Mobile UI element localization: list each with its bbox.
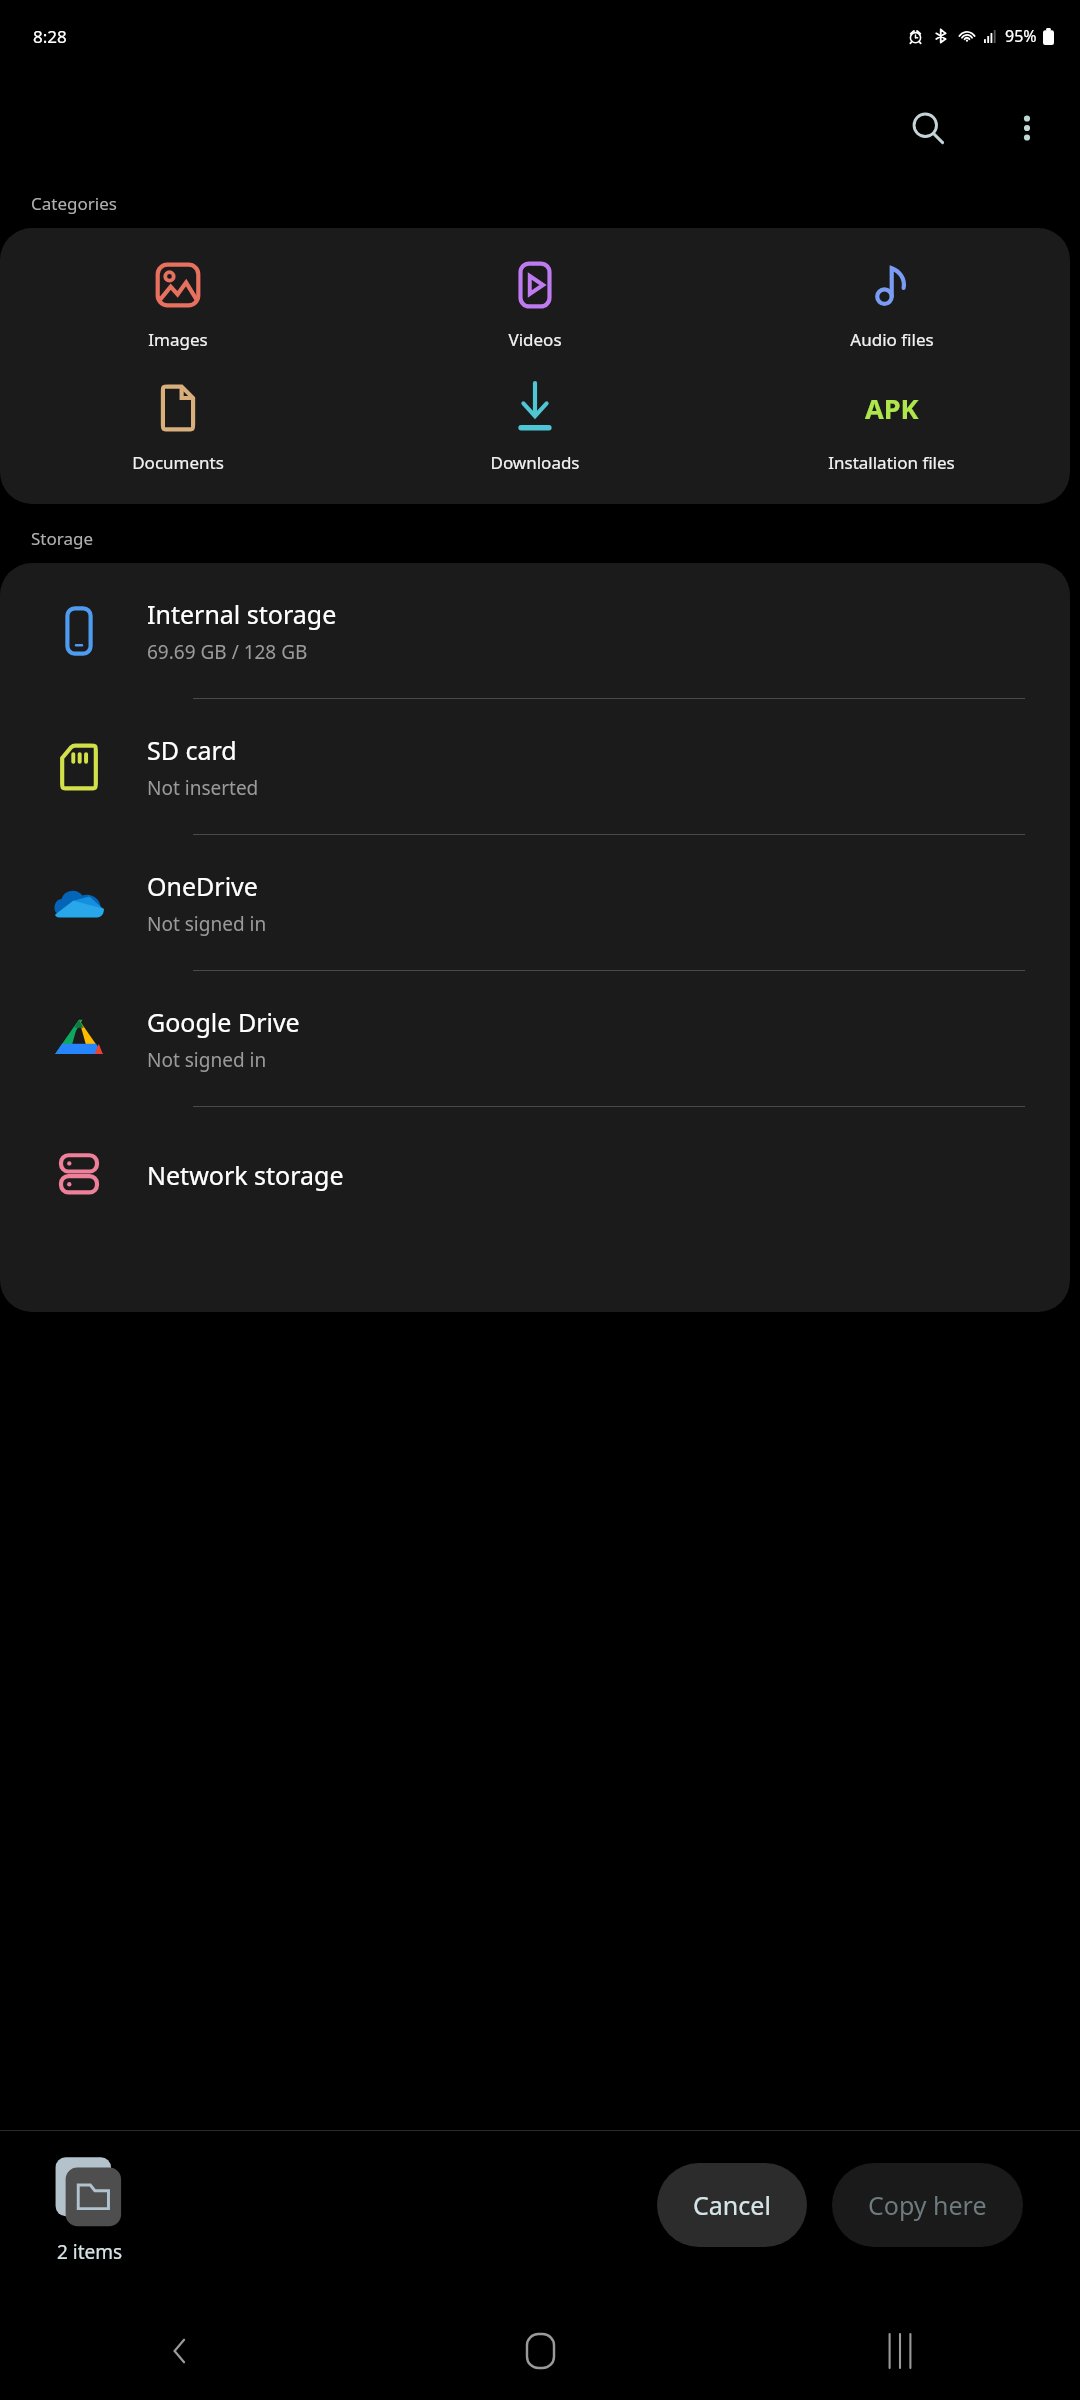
button[interactable]: More options (996, 97, 1058, 159)
staticText: APK (865, 390, 919, 427)
staticText: Documents (132, 451, 224, 474)
button[interactable]: APK (713, 375, 1070, 478)
button[interactable]: 2 items (48, 2154, 132, 2265)
staticText: 95% (1005, 25, 1037, 47)
staticText: Audio files (850, 328, 934, 351)
staticText: Downloads (490, 451, 580, 474)
button[interactable]: Copy here (832, 2163, 1023, 2247)
button[interactable]: Back (0, 2302, 360, 2400)
staticText: Cancel (693, 2188, 771, 2222)
button[interactable]: Google Drive (0, 971, 1070, 1106)
button[interactable]: Search (892, 92, 964, 164)
button[interactable]: Recent apps (720, 2302, 1080, 2400)
staticText: Internal storage (147, 597, 337, 631)
button[interactable]: Downloads (356, 375, 713, 478)
button[interactable]: Audio files (713, 252, 1070, 355)
button[interactable]: OneDrive (0, 835, 1070, 970)
staticText: 2 items (57, 2239, 123, 2265)
staticText: Categories (31, 192, 117, 215)
staticText: Videos (508, 328, 562, 351)
staticText: Not signed in (147, 911, 267, 937)
staticText: Not inserted (147, 775, 259, 801)
staticText: 8:28 (33, 25, 67, 48)
staticText: Images (148, 328, 208, 351)
staticText: Installation files (828, 451, 955, 474)
button[interactable]: Network storage (0, 1107, 1070, 1242)
button[interactable]: Videos (356, 252, 713, 355)
button[interactable]: Internal storage (0, 563, 1070, 698)
button[interactable]: SD card (0, 699, 1070, 834)
button[interactable]: Documents (0, 375, 356, 478)
staticText: 69.69 GB / 128 GB (147, 639, 308, 665)
button[interactable]: Home (360, 2302, 720, 2400)
staticText: Network storage (147, 1158, 344, 1192)
staticText: Storage (31, 527, 94, 550)
staticText: Google Drive (147, 1005, 300, 1039)
staticText: OneDrive (147, 869, 258, 903)
staticText: SD card (147, 733, 237, 767)
button[interactable]: Cancel (657, 2163, 807, 2247)
staticText: Copy here (868, 2188, 987, 2222)
staticText: Not signed in (147, 1047, 267, 1073)
button[interactable]: Images (0, 252, 356, 355)
